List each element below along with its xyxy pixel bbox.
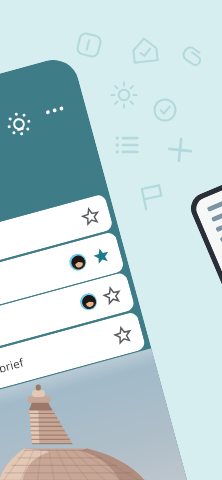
staticText: Design revisions xyxy=(0,257,72,317)
button[interactable]: Tablet preview xyxy=(193,156,222,368)
staticText: Team sync plans xyxy=(0,211,85,277)
staticText: Berlin House brief xyxy=(0,330,117,396)
button[interactable]: Berlin House brief xyxy=(0,311,146,410)
button[interactable]: More options xyxy=(41,97,68,124)
button[interactable]: Weekly recap xyxy=(0,271,136,370)
button[interactable]: Star xyxy=(102,286,122,306)
button[interactable]: Tips xyxy=(5,109,32,136)
button[interactable]: Team sync plans xyxy=(0,193,114,290)
button[interactable]: Star xyxy=(113,325,133,345)
button[interactable]: Star xyxy=(81,207,101,226)
button[interactable]: Star xyxy=(92,246,111,266)
button[interactable]: Design revisions xyxy=(0,231,125,332)
staticText: Weekly recap xyxy=(0,297,83,356)
